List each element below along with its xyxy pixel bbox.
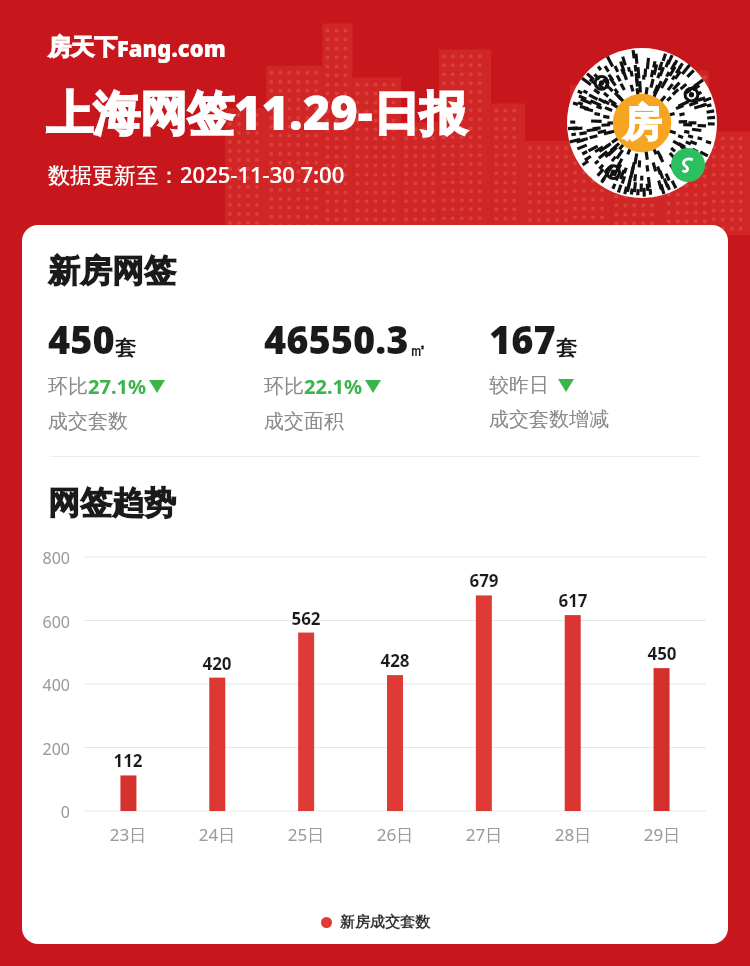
staticText: 新房网签 <box>48 251 176 291</box>
staticText: 450 <box>48 313 115 365</box>
staticText: 23日 <box>98 823 158 846</box>
staticText: 167 <box>489 313 556 365</box>
staticText: 27.1% <box>88 373 146 400</box>
staticText: 562 <box>276 607 336 630</box>
staticText: 套 <box>556 335 577 361</box>
staticText: 新房成交套数 <box>340 913 430 932</box>
button[interactable]: 扫码小程序二维码 <box>567 48 717 198</box>
staticText: 26日 <box>365 823 425 846</box>
staticText: 200 <box>22 738 70 760</box>
staticText: 29日 <box>632 823 692 846</box>
staticText: 600 <box>22 611 70 633</box>
staticText: 800 <box>22 547 70 569</box>
staticText: 450 <box>632 642 692 665</box>
staticText: 679 <box>454 569 514 592</box>
staticText: 27日 <box>454 823 514 846</box>
button[interactable]: 房天下 <box>48 32 226 62</box>
staticText: 房天下 <box>48 33 117 62</box>
staticText: 环比 <box>48 374 88 399</box>
staticText: ㎡ <box>409 340 426 361</box>
staticText: 24日 <box>187 823 247 846</box>
staticText: 22.1% <box>304 373 362 400</box>
staticText: 成交套数 <box>48 409 128 434</box>
staticText: 28日 <box>543 823 603 846</box>
staticText: 成交面积 <box>264 409 344 434</box>
staticText: 0 <box>22 801 70 823</box>
staticText: 420 <box>187 652 247 675</box>
staticText: 46550.3 <box>264 313 409 365</box>
staticText: 套 <box>115 335 136 361</box>
staticText: Fang.com <box>117 33 226 63</box>
staticText: 数据更新至：2025-11-30 7:00 <box>48 159 345 189</box>
staticText: 成交套数增减 <box>489 407 609 432</box>
staticText: 25日 <box>276 823 336 846</box>
staticText: 上海网签11.29-日报 <box>46 80 467 144</box>
staticText: 617 <box>543 589 603 612</box>
staticText: 网签趋势 <box>48 483 176 523</box>
staticText: 428 <box>365 649 425 672</box>
staticText: 较昨日 <box>489 373 549 398</box>
staticText: 112 <box>98 749 158 772</box>
staticText: 400 <box>22 674 70 696</box>
staticText: 房 <box>623 99 661 147</box>
staticText: 环比 <box>264 374 304 399</box>
